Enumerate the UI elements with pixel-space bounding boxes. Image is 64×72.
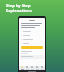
button[interactable] (20, 55, 44, 59)
button[interactable]: Step by Step (6, 3, 32, 13)
staticText: Step by Step (6, 3, 31, 8)
button[interactable] (21, 38, 43, 40)
button[interactable]: Home tab (20, 66, 24, 70)
button[interactable]: Tab (25, 66, 29, 70)
button[interactable]: Tab (35, 66, 39, 70)
button[interactable]: Tab (40, 66, 44, 70)
staticText: Explanations (6, 8, 32, 13)
button[interactable] (21, 42, 43, 44)
button[interactable]: Tab (30, 66, 34, 70)
button[interactable] (21, 34, 43, 36)
button[interactable] (21, 46, 43, 49)
button[interactable] (21, 30, 43, 32)
